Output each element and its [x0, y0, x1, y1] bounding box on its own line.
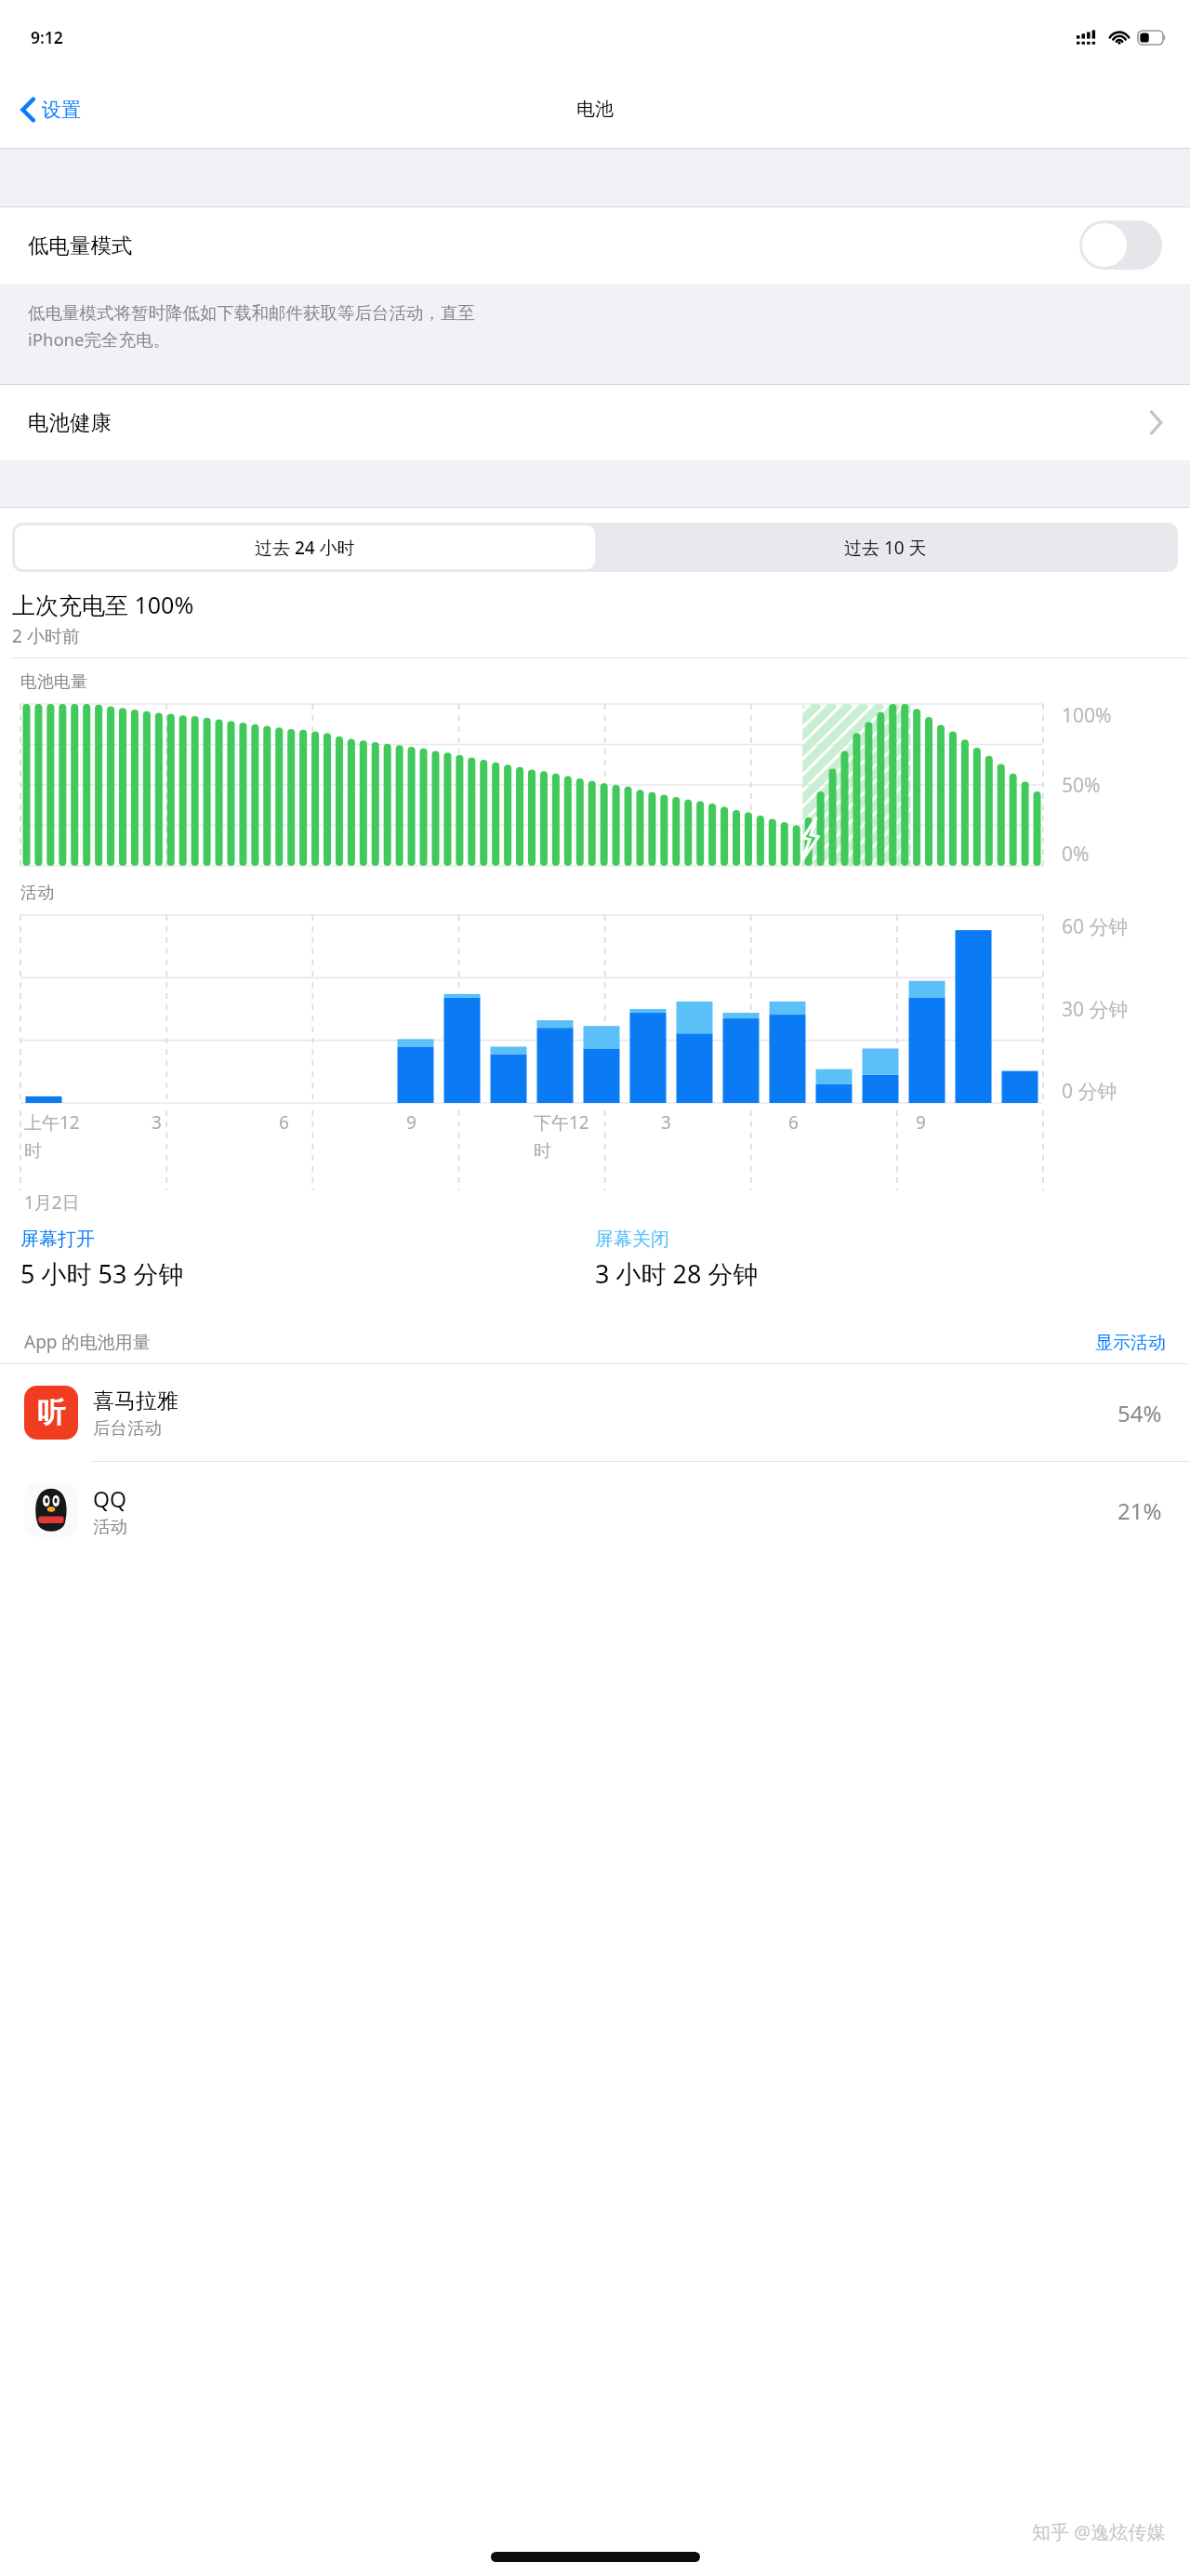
- staticText: 9:12: [31, 26, 63, 48]
- staticText: 54%: [1117, 1398, 1162, 1428]
- button[interactable]: 过去 10 天: [595, 525, 1175, 569]
- staticText: 喜马拉雅: [93, 1388, 178, 1414]
- staticText: 上午12 时: [24, 1110, 80, 1162]
- staticText: 上次充电至 100%: [12, 589, 194, 620]
- staticText: QQ: [93, 1484, 126, 1513]
- staticText: 0 分钟: [1062, 1078, 1117, 1105]
- staticText: 9: [916, 1110, 926, 1135]
- staticText: 0%: [1062, 841, 1090, 868]
- staticText: 60 分钟: [1062, 913, 1129, 940]
- staticText: 9: [406, 1110, 416, 1135]
- staticText: 屏幕关闭: [595, 1228, 669, 1251]
- staticText: 6: [788, 1110, 799, 1135]
- staticText: 显示活动: [1095, 1332, 1166, 1354]
- staticText: 过去 24 小时: [255, 536, 355, 560]
- staticText: 电池健康: [28, 409, 112, 435]
- staticText: 2 小时前: [12, 624, 80, 648]
- button[interactable]: 听: [0, 1364, 1190, 1461]
- staticText: 知乎 @逸炫传媒: [1032, 2519, 1166, 2544]
- staticText: 100%: [1062, 702, 1112, 729]
- button[interactable]: 显示活动: [1095, 1332, 1166, 1363]
- staticText: 3: [661, 1110, 671, 1135]
- staticText: 21%: [1117, 1495, 1162, 1526]
- staticText: App 的电池用量: [24, 1330, 151, 1354]
- staticText: 低电量模式: [28, 232, 133, 259]
- button[interactable]: 过去 24 小时: [15, 525, 595, 569]
- staticText: 后台活动: [93, 1417, 162, 1439]
- staticText: 低电量模式将暂时降低如下载和邮件获取等后台活动，直至 iPhone完全充电。: [28, 302, 475, 351]
- staticText: 3: [152, 1110, 162, 1135]
- staticText: 设置: [42, 98, 81, 122]
- staticText: 电池电量: [20, 671, 87, 693]
- staticText: 5 小时 53 分钟: [20, 1256, 184, 1291]
- staticText: 50%: [1062, 772, 1101, 799]
- staticText: 过去 10 天: [844, 536, 927, 560]
- staticText: 听: [37, 1395, 65, 1430]
- button[interactable]: 设置: [18, 92, 85, 127]
- staticText: 6: [279, 1110, 289, 1135]
- staticText: 下午12 时: [534, 1110, 589, 1162]
- staticText: 活动: [20, 883, 54, 904]
- staticText: 活动: [93, 1516, 127, 1537]
- staticText: 1月2日: [24, 1190, 80, 1215]
- staticText: 30 分钟: [1062, 996, 1129, 1023]
- staticText: 电池: [576, 98, 614, 121]
- button[interactable]: 低电量模式: [0, 206, 1190, 284]
- button[interactable]: 电池健康: [0, 384, 1190, 460]
- staticText: 3 小时 28 分钟: [595, 1256, 759, 1291]
- staticText: 屏幕打开: [20, 1228, 95, 1251]
- button[interactable]: QQ: [0, 1462, 1190, 1559]
